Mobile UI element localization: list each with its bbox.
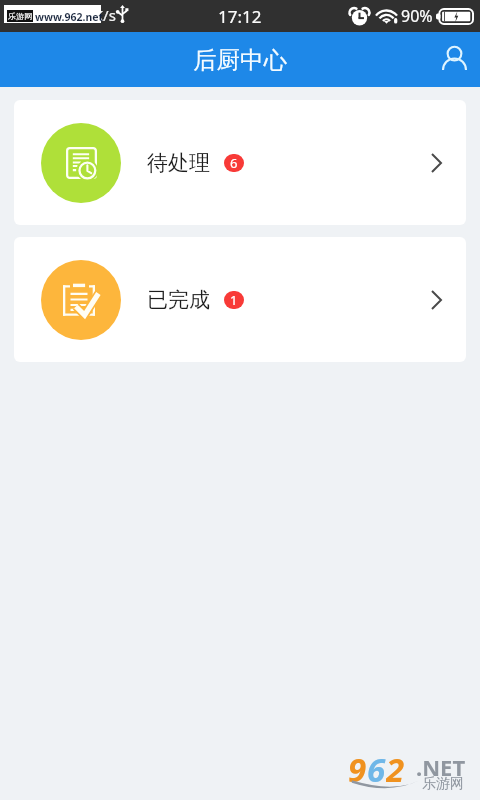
staticText: 2: [386, 747, 405, 785]
staticText: 乐游网: [422, 775, 464, 793]
staticText: 6: [230, 154, 238, 172]
staticText: www.962.net: [35, 10, 104, 24]
button[interactable]: Account: [429, 32, 480, 87]
staticText: 后厨中心: [193, 45, 287, 75]
staticText: 6: [367, 747, 386, 785]
staticText: 待处理: [147, 150, 210, 176]
staticText: 9: [348, 747, 367, 785]
staticText: 乐游网: [8, 11, 32, 21]
staticText: 12.5K/s: [64, 5, 116, 25]
staticText: 90%: [401, 5, 433, 27]
staticText: 17:12: [218, 5, 262, 28]
button[interactable]: 已完成: [14, 237, 466, 362]
button[interactable]: 待处理: [14, 100, 466, 225]
staticText: 已完成: [147, 287, 210, 313]
staticText: .NET: [416, 752, 466, 782]
staticText: 1: [230, 291, 238, 309]
